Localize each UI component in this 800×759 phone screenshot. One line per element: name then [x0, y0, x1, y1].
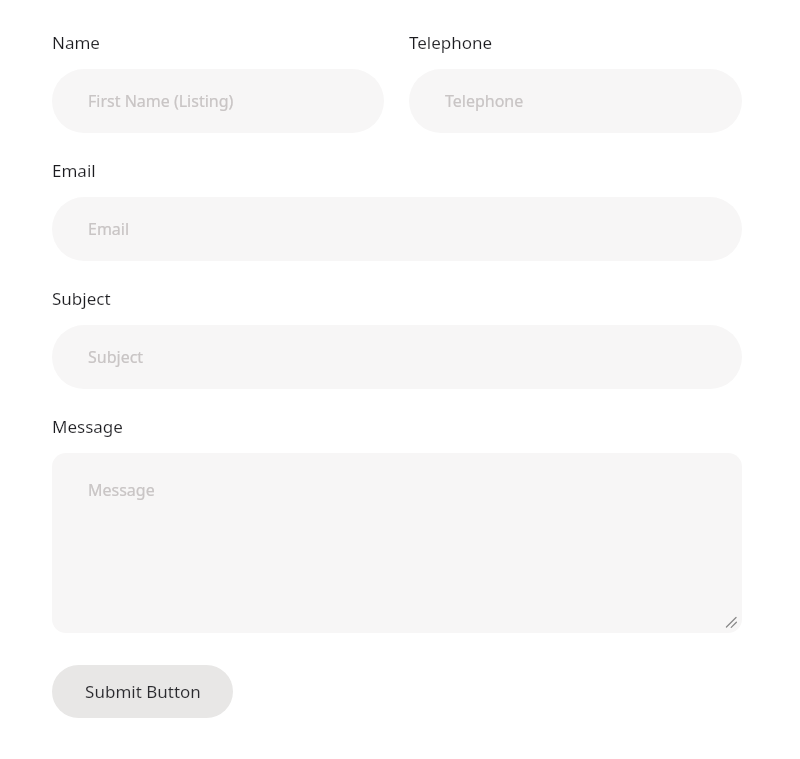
button[interactable]: Submit Button [52, 665, 233, 718]
button[interactable]: First Name (Listing) [52, 69, 384, 133]
staticText: Submit Button [85, 680, 201, 703]
button[interactable]: Subject [52, 325, 742, 389]
button[interactable]: Telephone [409, 69, 742, 133]
staticText: Email [52, 159, 96, 182]
staticText: Telephone [409, 31, 493, 54]
staticText: Telephone [445, 90, 524, 112]
staticText: Name [52, 31, 100, 54]
staticText: Subject [52, 287, 111, 310]
button[interactable]: Email [52, 197, 742, 261]
staticText: Subject [88, 346, 144, 368]
staticText: First Name (Listing) [88, 90, 234, 112]
staticText: Email [88, 218, 130, 240]
staticText: Message [52, 415, 123, 438]
staticText: Message [88, 479, 155, 501]
